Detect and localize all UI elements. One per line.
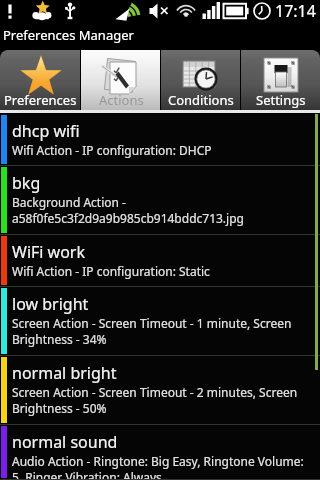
button[interactable]: Preferences xyxy=(0,50,80,110)
staticText: bkg xyxy=(12,172,41,194)
staticText: Screen Action - Screen Timeout - 2 minut… xyxy=(12,384,298,416)
staticText: Background Action - a58f0fe5c3f2d9a9b985… xyxy=(12,194,244,226)
button[interactable]: bkg xyxy=(0,166,320,235)
staticText: Wifi Action - IP configuration: DHCP xyxy=(12,142,212,158)
button[interactable]: WiFi work xyxy=(0,235,320,287)
button[interactable]: Actions xyxy=(81,50,160,110)
button[interactable]: Settings xyxy=(241,50,320,110)
button[interactable]: normal sound xyxy=(0,425,320,480)
staticText: Audio Action - Ringtone: Big Easy, Ringt… xyxy=(12,453,304,479)
button[interactable]: dhcp wifi xyxy=(0,114,320,166)
staticText: normal bright xyxy=(12,362,117,384)
staticText: normal sound xyxy=(12,431,118,453)
staticText: dhcp wifi xyxy=(12,120,80,142)
staticText: Wifi Action - IP configuration: Static xyxy=(12,263,210,279)
staticText: WiFi work xyxy=(12,241,86,263)
staticText: Preferences Manager xyxy=(3,26,134,44)
button[interactable]: low bright xyxy=(0,287,320,356)
button[interactable]: Conditions xyxy=(161,50,240,110)
staticText: Preferences xyxy=(4,91,77,109)
staticText: low bright xyxy=(12,293,89,315)
staticText: Settings xyxy=(256,91,306,109)
staticText: Screen Action - Screen Timeout - 1 minut… xyxy=(12,315,292,347)
button[interactable]: normal bright xyxy=(0,356,320,425)
staticText: Conditions xyxy=(168,91,234,109)
staticText: 17:14 xyxy=(275,0,316,21)
staticText: Actions xyxy=(99,91,144,109)
